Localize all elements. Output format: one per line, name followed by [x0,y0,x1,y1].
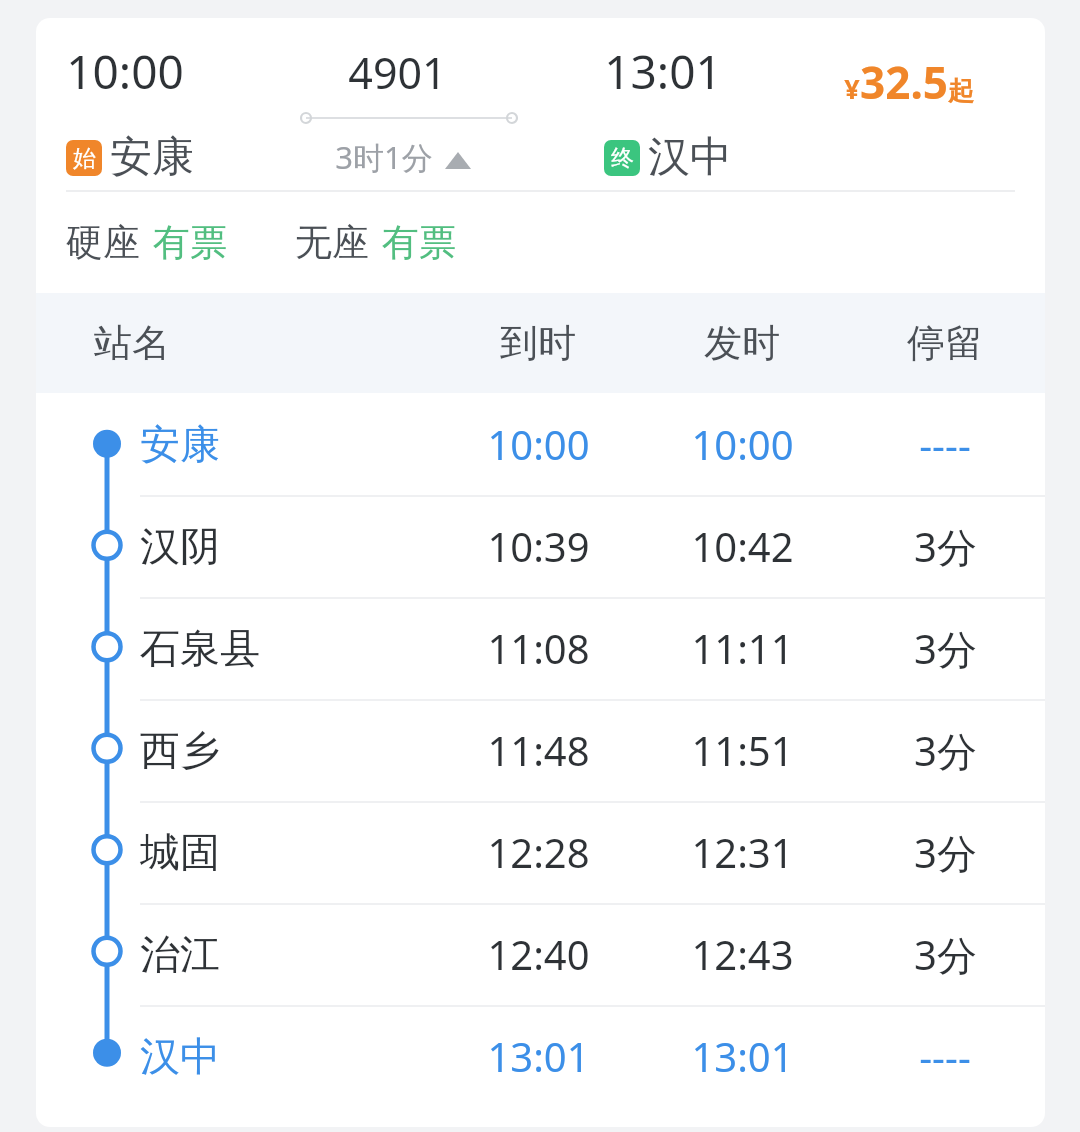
staticText: 12:43 [691,927,794,981]
staticText: 10:42 [691,519,794,573]
staticText: 3分 [914,927,977,982]
staticText: 13:01 [487,1029,590,1083]
staticText: 12:40 [487,927,590,981]
staticText: 汉中 [648,131,732,184]
staticText: 发时 [704,319,780,367]
staticText: 硬座 [66,219,140,266]
staticText: ---- [919,417,971,471]
staticText: 3分 [914,825,977,880]
staticText: 12:31 [691,825,794,879]
staticText: 13:01 [604,40,722,103]
staticText: 停留 [907,319,983,367]
button[interactable]: 汉中 [36,1005,1045,1107]
button[interactable]: 10:00 [36,18,1045,190]
staticText: 起 [948,75,974,108]
staticText: 11:51 [691,723,794,777]
staticText: 10:00 [487,417,590,471]
button[interactable]: 硬座 [36,192,1045,293]
staticText: 12:28 [487,825,590,879]
staticText: 11:08 [487,621,590,675]
staticText: 到时 [500,319,576,367]
staticText: 有票 [382,219,456,266]
staticText: 终 [611,144,634,173]
staticText: 11:11 [691,621,794,675]
staticText: 站名 [94,319,170,367]
staticText: 石泉县 [140,623,260,673]
staticText: 3时1分 [335,136,433,178]
staticText: 32.5 [860,52,948,112]
staticText: 13:01 [691,1029,794,1083]
staticText: 3分 [914,621,977,676]
staticText: 10:39 [487,519,590,573]
button[interactable]: 石泉县 [36,597,1045,699]
button[interactable]: 城固 [36,801,1045,903]
staticText: 治江 [140,929,220,979]
staticText: 安康 [140,419,220,469]
staticText: 有票 [153,219,227,266]
staticText: 11:48 [487,723,590,777]
staticText: 西乡 [140,725,220,775]
staticText: ¥ [844,70,860,107]
staticText: ---- [919,1029,971,1083]
staticText: 3分 [914,519,977,574]
staticText: 汉中 [140,1031,220,1081]
staticText: 3分 [914,723,977,778]
staticText: 城固 [140,827,220,877]
staticText: 安康 [110,131,194,184]
button[interactable]: Show route detail [335,136,471,178]
staticText: 10:00 [691,417,794,471]
staticText: 无座 [295,219,369,266]
button[interactable]: 汉阴 [36,495,1045,597]
button[interactable]: 安康 [36,393,1045,495]
staticText: 始 [73,144,96,173]
button[interactable]: 治江 [36,903,1045,1005]
staticText: 汉阴 [140,521,220,571]
button[interactable]: 西乡 [36,699,1045,801]
staticText: 4901 [348,43,447,102]
staticText: 10:00 [66,40,184,103]
